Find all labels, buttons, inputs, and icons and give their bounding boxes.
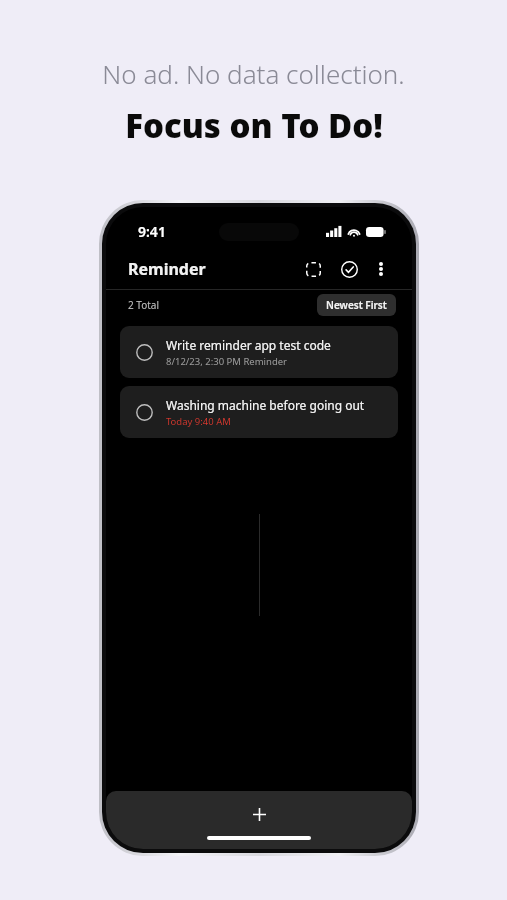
button[interactable]: More options — [368, 256, 394, 282]
staticText: Write reminder app test code — [166, 337, 331, 353]
staticText: Reminder — [128, 258, 206, 280]
staticText: Today 9:40 AM — [166, 415, 231, 428]
staticText: Newest First — [326, 298, 387, 312]
button[interactable]: Repeat — [298, 254, 328, 284]
button[interactable]: Mark all done — [334, 254, 364, 284]
button[interactable]: Add reminder — [244, 799, 274, 829]
staticText: Washing machine before going out — [166, 397, 365, 413]
button[interactable]: Newest First — [317, 294, 396, 316]
staticText: 8/12/23, 2:30 PM Reminder — [166, 355, 288, 368]
button[interactable]: Complete task — [130, 338, 158, 366]
staticText: 9:41 — [138, 222, 166, 241]
staticText: 2 Total — [128, 298, 160, 312]
button[interactable]: Complete task — [120, 326, 398, 378]
staticText: No ad. No data collection. — [102, 56, 405, 91]
button[interactable]: Complete task — [130, 398, 158, 426]
button[interactable]: Complete task — [120, 386, 398, 438]
staticText: Focus on To Do! — [125, 103, 383, 148]
